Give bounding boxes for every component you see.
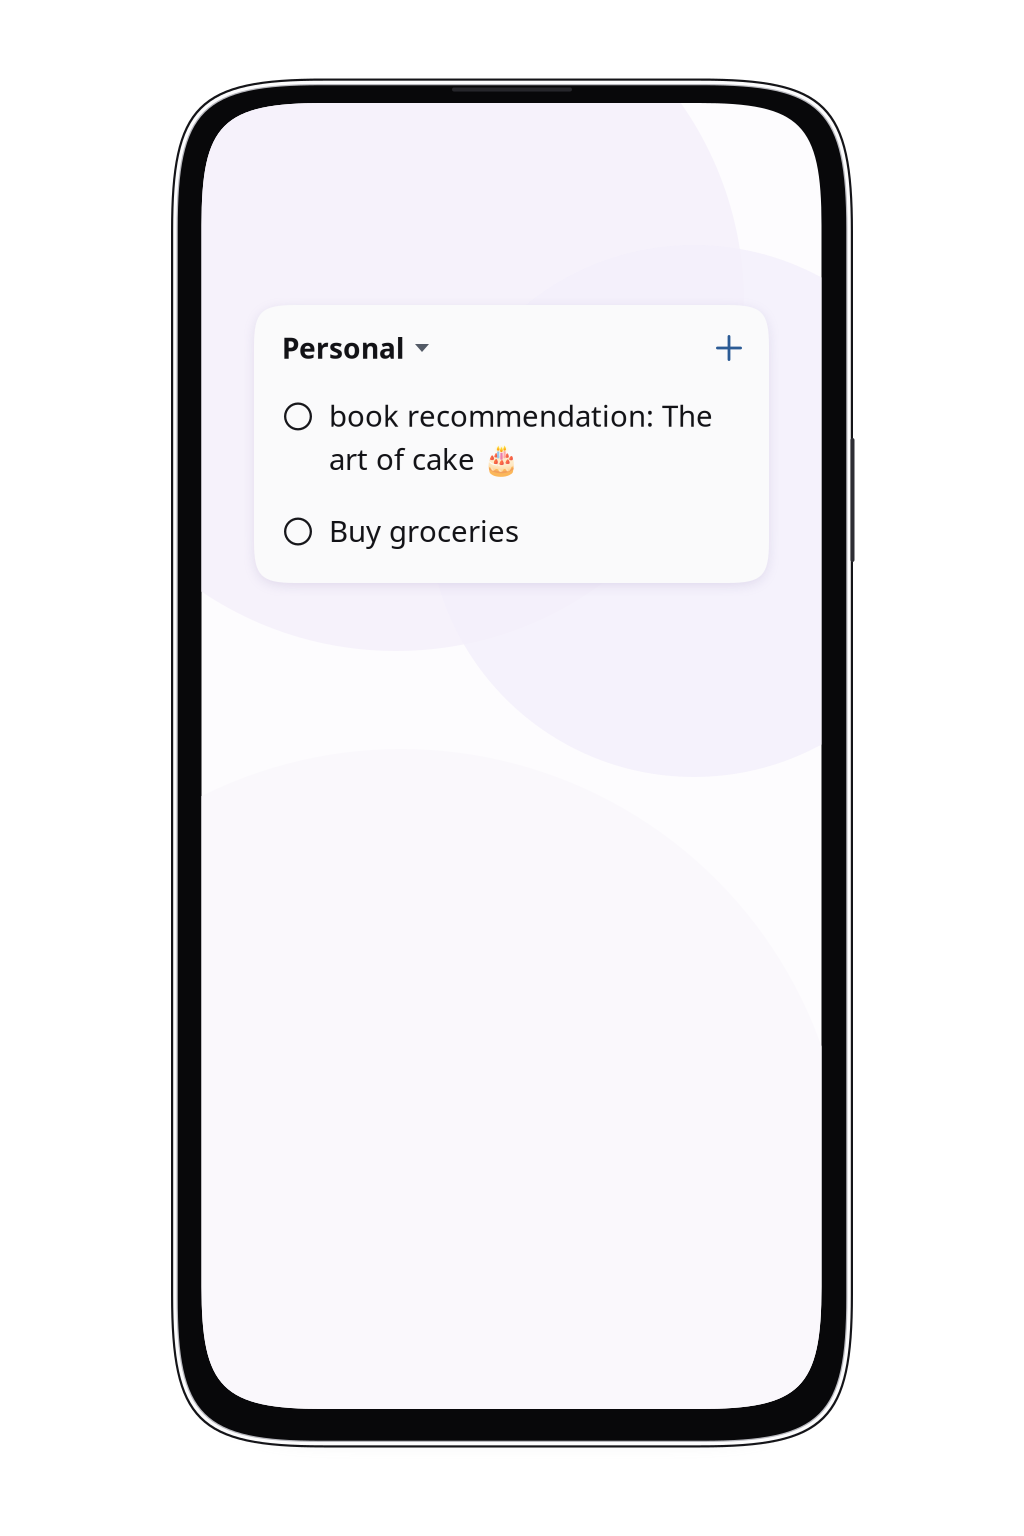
button[interactable]: Personal — [277, 320, 434, 376]
staticText: book recommendation: The art of cake 🎂 — [329, 396, 713, 478]
button[interactable]: book recommendation: The art of cake 🎂 — [284, 392, 739, 482]
staticText: Personal — [282, 329, 404, 367]
button[interactable]: Add reminder — [706, 325, 752, 371]
button[interactable]: Buy groceries — [284, 507, 739, 554]
staticText: Buy groceries — [329, 511, 519, 550]
